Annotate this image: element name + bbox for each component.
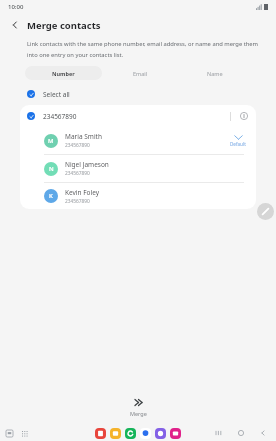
button[interactable]: Gallery bbox=[95, 428, 106, 439]
staticText: Merge bbox=[130, 410, 147, 417]
button[interactable]: N bbox=[20, 155, 256, 182]
staticText: Number bbox=[52, 70, 75, 77]
staticText: N bbox=[49, 165, 54, 173]
button[interactable]: Merge bbox=[116, 395, 161, 419]
staticText: Merge contacts bbox=[27, 19, 101, 32]
button[interactable]: Camera bbox=[170, 428, 181, 439]
button[interactable]: Messages bbox=[140, 428, 151, 439]
staticText: Name bbox=[207, 70, 223, 77]
staticText: Email bbox=[133, 70, 148, 77]
staticText: into one entry on your contacts list. bbox=[27, 51, 124, 59]
staticText: Kevin Foley bbox=[65, 188, 100, 197]
button[interactable]: Files bbox=[110, 428, 121, 439]
button[interactable]: Phone bbox=[125, 428, 136, 439]
button[interactable]: Edit bbox=[257, 203, 274, 220]
button[interactable]: Email bbox=[102, 66, 179, 80]
button[interactable]: Select all bbox=[0, 86, 276, 102]
button[interactable]: Info bbox=[238, 110, 250, 122]
staticText: 234567890 bbox=[65, 170, 90, 177]
staticText: Maria Smith bbox=[65, 132, 102, 141]
button[interactable]: Browser bbox=[155, 428, 166, 439]
staticText: M bbox=[48, 137, 54, 145]
staticText: Default bbox=[230, 141, 246, 147]
staticText: 234567890 bbox=[43, 112, 77, 121]
button[interactable]: Back bbox=[6, 16, 24, 34]
staticText: Link contacts with the same phone number… bbox=[27, 40, 259, 48]
button[interactable]: Home bbox=[236, 428, 246, 438]
button[interactable]: Recents bbox=[214, 428, 224, 438]
button[interactable]: Name bbox=[179, 66, 251, 80]
button[interactable]: Keyboard bbox=[5, 429, 14, 438]
staticText: 234567890 bbox=[65, 198, 90, 205]
button[interactable]: Number bbox=[25, 66, 102, 80]
staticText: Select all bbox=[43, 90, 70, 99]
button[interactable]: Back bbox=[258, 428, 268, 438]
button[interactable]: Apps bbox=[20, 429, 29, 438]
staticText: 10:00 bbox=[8, 3, 24, 11]
button[interactable]: M bbox=[20, 127, 256, 154]
staticText: Nigel Jameson bbox=[65, 160, 109, 169]
button[interactable]: 234567890 bbox=[20, 105, 256, 127]
staticText: K bbox=[49, 192, 53, 200]
staticText: 234567890 bbox=[65, 142, 90, 149]
button[interactable]: K bbox=[20, 183, 256, 209]
